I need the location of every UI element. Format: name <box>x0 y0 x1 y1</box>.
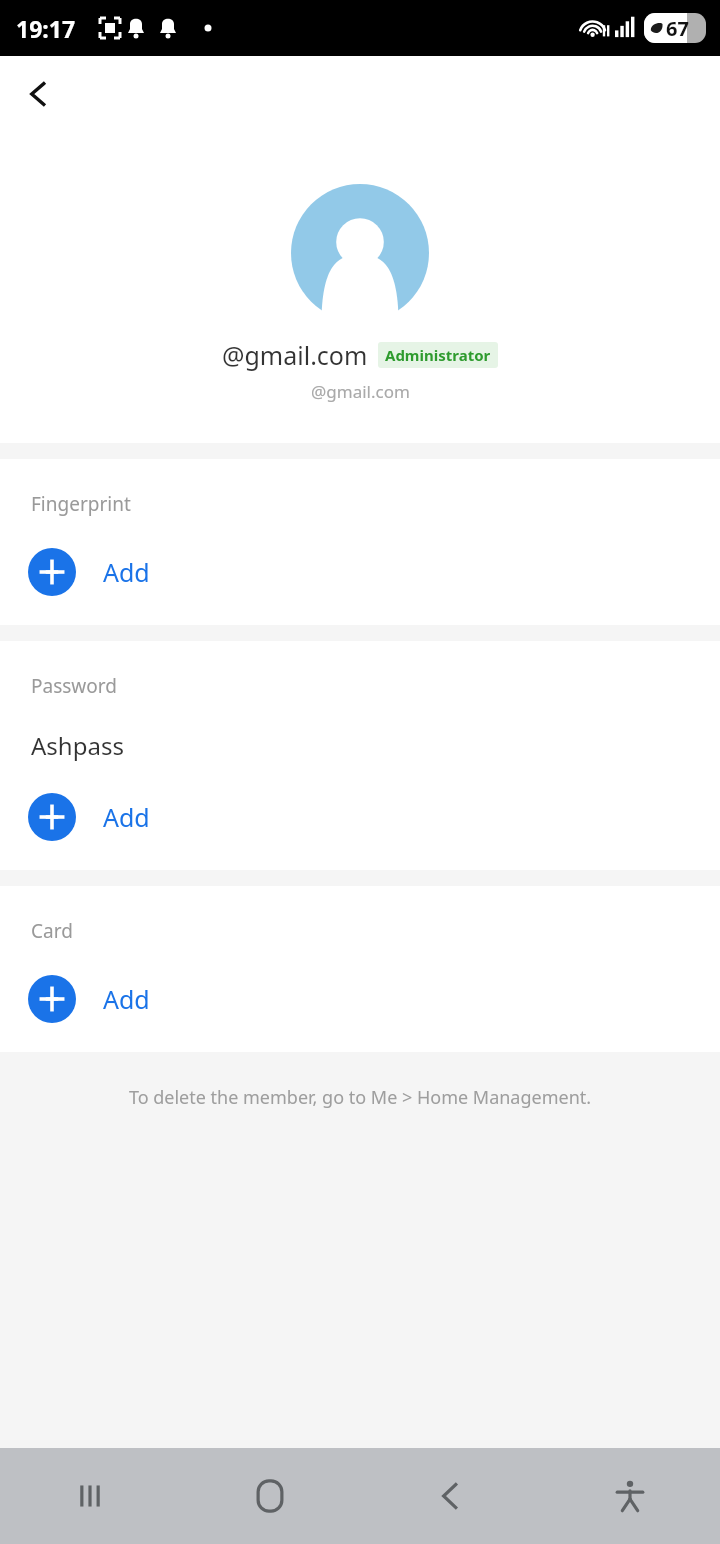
staticText: Ashpass <box>31 729 124 762</box>
staticText: @gmail.com <box>222 338 368 372</box>
staticText: To delete the member, go to Me > Home Ma… <box>24 1085 696 1110</box>
staticText: @gmail.com <box>311 380 410 403</box>
staticText: 19:17 <box>16 13 76 44</box>
button[interactable]: Add <box>0 787 720 847</box>
staticText: 67 <box>666 15 689 42</box>
button[interactable]: Recents <box>0 1448 180 1544</box>
staticText: Card <box>31 918 73 944</box>
button[interactable]: Back <box>360 1448 540 1544</box>
staticText: Add <box>103 800 150 834</box>
staticText: Administrator <box>385 345 491 365</box>
staticText: Password <box>31 673 117 699</box>
button[interactable]: Home <box>180 1448 360 1544</box>
button[interactable]: Accessibility <box>540 1448 720 1544</box>
staticText: Add <box>103 982 150 1016</box>
button[interactable]: Add <box>0 542 720 602</box>
staticText: Fingerprint <box>31 491 131 517</box>
button[interactable]: Back <box>10 66 66 122</box>
button[interactable]: Add <box>0 969 720 1029</box>
staticText: Add <box>103 555 150 589</box>
